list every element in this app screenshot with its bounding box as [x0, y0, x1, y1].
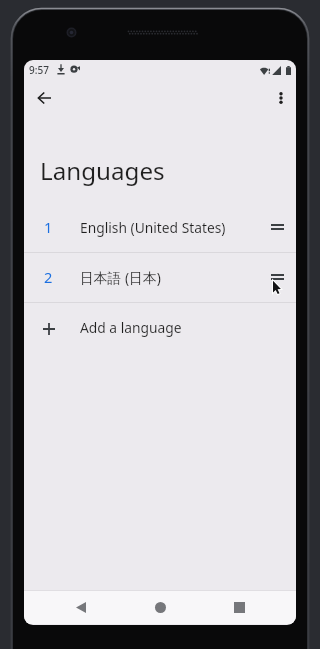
button[interactable]: Home	[143, 590, 177, 624]
button[interactable]: 2	[24, 252, 296, 302]
staticText: Add a language	[80, 318, 182, 337]
button[interactable]: Add a language	[24, 302, 296, 352]
button[interactable]: Reorder	[257, 207, 296, 247]
staticText: 日本語 (日本)	[80, 268, 161, 287]
button[interactable]: Navigate up	[27, 81, 61, 115]
button[interactable]: More options	[264, 81, 296, 115]
button[interactable]: Reorder	[257, 257, 296, 297]
button[interactable]: Back	[64, 590, 98, 624]
button[interactable]: 1	[24, 202, 296, 252]
staticText: English (United States)	[80, 218, 226, 237]
staticText: 1	[44, 217, 53, 237]
button[interactable]: Recent apps	[222, 590, 256, 624]
staticText: 2	[44, 267, 53, 287]
staticText: Languages	[40, 154, 165, 187]
staticText: 9:57	[29, 63, 49, 77]
